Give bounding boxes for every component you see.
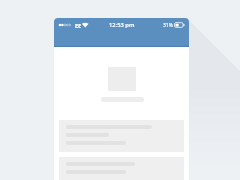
staticText: 12:53 pm bbox=[109, 21, 135, 29]
button[interactable] bbox=[59, 157, 184, 180]
staticText: EE bbox=[75, 22, 82, 29]
button[interactable] bbox=[59, 120, 184, 152]
staticText: 31% bbox=[163, 22, 173, 29]
